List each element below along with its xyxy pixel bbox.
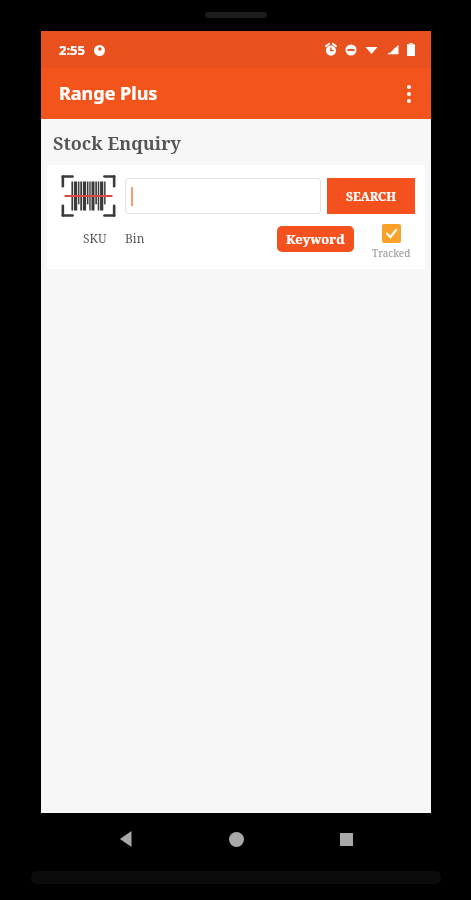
button[interactable]: Home [212,815,260,863]
staticText: Keyword [286,230,345,248]
button[interactable]: Tracked [372,224,411,260]
button[interactable]: Recent apps [322,815,370,863]
staticText: SKU [83,230,107,246]
staticText: Range Plus [59,81,158,106]
staticText: SEARCH [346,188,396,204]
staticText: 2:55 [59,41,85,59]
button[interactable]: Scan barcode [57,174,119,218]
button[interactable]: More options [387,72,431,116]
button[interactable]: Back [103,815,151,863]
staticText: Tracked [372,246,411,260]
button[interactable]: Keyword [277,226,354,252]
button[interactable] [125,178,321,214]
button[interactable]: SKU [83,230,107,246]
button[interactable]: SEARCH [327,178,415,214]
button[interactable]: Bin [125,230,145,246]
staticText: Bin [125,230,145,246]
staticText: Stock Enquiry [53,131,181,156]
